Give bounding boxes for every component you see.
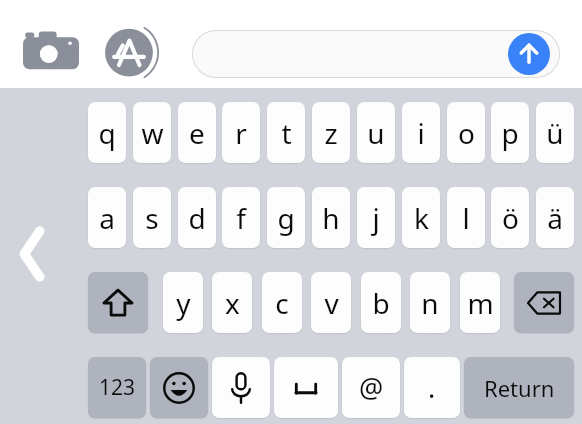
staticText: b xyxy=(372,284,390,322)
button[interactable]: Message input xyxy=(192,30,560,78)
button[interactable]: ü xyxy=(536,102,574,163)
button[interactable]: c xyxy=(262,272,302,333)
staticText: s xyxy=(145,199,159,237)
button[interactable]: j xyxy=(357,187,395,248)
staticText: c xyxy=(275,284,289,322)
staticText: o xyxy=(458,114,475,152)
button[interactable]: v xyxy=(311,272,351,333)
button[interactable]: q xyxy=(88,102,126,163)
staticText: m xyxy=(467,284,494,322)
staticText: Return xyxy=(484,373,555,403)
staticText: f xyxy=(236,199,246,237)
button[interactable]: At sign xyxy=(342,357,400,418)
button[interactable]: t xyxy=(267,102,305,163)
button[interactable]: r xyxy=(222,102,260,163)
staticText: . xyxy=(428,369,436,406)
button[interactable]: s xyxy=(133,187,171,248)
staticText: i xyxy=(417,114,425,152)
staticText: t xyxy=(281,114,292,152)
button[interactable]: ä xyxy=(536,187,574,248)
button[interactable]: e xyxy=(178,102,216,163)
button[interactable]: p xyxy=(491,102,529,163)
staticText: r xyxy=(235,114,247,152)
staticText: g xyxy=(277,199,295,237)
button[interactable]: Period xyxy=(404,357,460,418)
button[interactable]: a xyxy=(88,187,126,248)
staticText: u xyxy=(367,114,385,152)
staticText: n xyxy=(421,284,439,322)
button[interactable]: d xyxy=(178,187,216,248)
staticText: q xyxy=(98,114,116,152)
staticText: h xyxy=(322,199,340,237)
staticText: j xyxy=(372,199,380,237)
staticText: l xyxy=(462,199,470,237)
button[interactable]: b xyxy=(361,272,401,333)
button[interactable]: k xyxy=(402,187,440,248)
button[interactable]: w xyxy=(133,102,171,163)
button[interactable]: g xyxy=(267,187,305,248)
staticText: k xyxy=(414,199,429,237)
button[interactable]: u xyxy=(357,102,395,163)
button[interactable]: 123 xyxy=(88,357,146,418)
staticText: 123 xyxy=(99,373,136,402)
staticText: ä xyxy=(547,199,563,237)
staticText: a xyxy=(99,199,115,237)
staticText: ö xyxy=(502,199,519,237)
staticText: d xyxy=(188,199,206,237)
staticText: y xyxy=(176,284,191,322)
button[interactable]: Backspace xyxy=(514,272,574,333)
button[interactable]: x xyxy=(212,272,252,333)
button[interactable]: Space xyxy=(274,357,338,418)
staticText: ü xyxy=(546,114,564,152)
staticText: v xyxy=(324,284,339,322)
button[interactable]: Camera xyxy=(22,29,80,71)
button[interactable]: y xyxy=(163,272,203,333)
button[interactable]: Return xyxy=(464,357,574,418)
staticText: z xyxy=(324,114,338,152)
button[interactable]: Send xyxy=(508,33,550,75)
button[interactable]: z xyxy=(312,102,350,163)
staticText: e xyxy=(189,114,205,152)
staticText: p xyxy=(501,114,519,152)
button[interactable]: i xyxy=(402,102,440,163)
staticText: x xyxy=(225,284,240,322)
button[interactable]: m xyxy=(460,272,500,333)
button[interactable]: Emoji xyxy=(150,357,208,418)
button[interactable]: f xyxy=(222,187,260,248)
button[interactable]: Dictation xyxy=(212,357,270,418)
button[interactable]: h xyxy=(312,187,350,248)
staticText: @ xyxy=(359,369,384,406)
button[interactable]: Back xyxy=(8,218,56,290)
button[interactable]: Shift xyxy=(88,272,148,333)
button[interactable]: l xyxy=(447,187,485,248)
button[interactable]: o xyxy=(447,102,485,163)
button[interactable]: App Store xyxy=(104,24,166,76)
staticText: w xyxy=(141,114,164,152)
button[interactable]: n xyxy=(410,272,450,333)
button[interactable]: ö xyxy=(491,187,529,248)
